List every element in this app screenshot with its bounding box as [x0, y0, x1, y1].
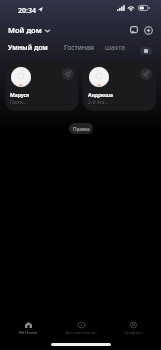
- button[interactable]: Умный дом: [5, 41, 51, 54]
- staticText: 20:34: [18, 6, 36, 16]
- button[interactable]: Автоматизация: [56, 321, 106, 337]
- button[interactable]: Мой дом: [6, 23, 52, 37]
- button[interactable]: Гостиная: [61, 41, 97, 54]
- button[interactable]: Правка: [69, 123, 93, 134]
- staticText: 2-й эта...: [88, 99, 109, 106]
- staticText: Автоматизация: [65, 330, 97, 336]
- button[interactable]: шахта: [102, 41, 129, 54]
- staticText: Профиль: [124, 330, 143, 336]
- staticText: Гостиная: [64, 43, 94, 52]
- button[interactable]: Cast audio: [5, 61, 78, 111]
- button[interactable]: Messages: [127, 23, 141, 37]
- staticText: Маруся: [10, 92, 30, 99]
- staticText: Мой дом: [8, 25, 42, 35]
- button[interactable]: Layout: [140, 47, 152, 55]
- button[interactable]: Cast audio: [140, 68, 152, 80]
- button[interactable]: Cast audio: [62, 68, 74, 80]
- staticText: шахта: [105, 43, 126, 52]
- staticText: Госпо...: [10, 99, 28, 106]
- staticText: Андрюша: [88, 92, 114, 99]
- button[interactable]: Мі Home: [3, 321, 53, 337]
- button[interactable]: Cast audio: [83, 61, 156, 111]
- button[interactable]: Профиль: [108, 321, 158, 337]
- staticText: Мі Home: [19, 330, 37, 336]
- staticText: Умный дом: [8, 43, 48, 52]
- staticText: Правка: [73, 126, 90, 132]
- button[interactable]: Add device: [141, 23, 155, 37]
